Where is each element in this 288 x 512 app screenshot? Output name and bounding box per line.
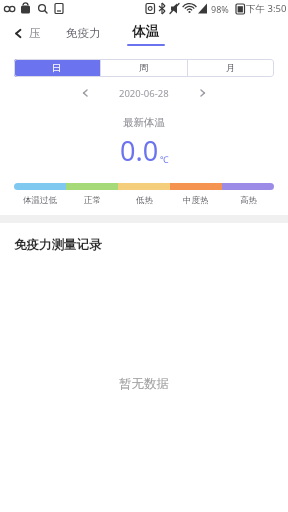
staticText: 免疫力测量记录 (14, 237, 102, 253)
button[interactable]: Next day (193, 84, 212, 102)
staticText: 2020-06-28 (119, 87, 169, 100)
staticText: 低热 (136, 195, 153, 206)
button[interactable]: 免疫力 (60, 20, 107, 46)
staticText: 高热 (240, 195, 257, 206)
staticText: 周 (139, 62, 149, 74)
button[interactable]: 日 (14, 59, 100, 77)
staticText: 压 (29, 26, 41, 40)
staticText: 月 (226, 62, 236, 74)
staticText: 98% (211, 3, 229, 15)
staticText: 正常 (84, 195, 101, 206)
staticText: 0.0 (120, 132, 159, 169)
staticText: 免疫力 (66, 26, 101, 40)
staticText: 最新体温 (123, 116, 165, 129)
button[interactable]: 周 (101, 59, 187, 77)
staticText: 体温 (132, 23, 159, 40)
button[interactable]: Previous day (76, 84, 95, 102)
staticText: 体温过低 (23, 195, 57, 206)
staticText: 暂无数据 (119, 376, 169, 392)
button[interactable]: Back (8, 21, 46, 45)
button[interactable]: 月 (188, 59, 274, 77)
other: Back (13, 28, 24, 39)
staticText: ℃ (160, 153, 169, 165)
staticText: 中度热 (183, 195, 209, 206)
button[interactable]: 体温 (124, 19, 167, 49)
staticText: 日 (52, 62, 62, 74)
staticText: 下午 3:50 (246, 2, 287, 15)
